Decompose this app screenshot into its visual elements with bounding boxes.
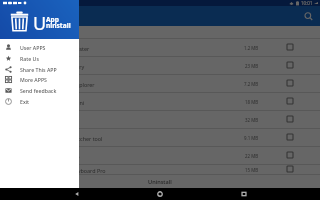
staticText: 9.1 MB (244, 135, 259, 141)
staticText: Share This APP (20, 66, 57, 73)
button[interactable]: Share This APP (0, 64, 79, 75)
staticText: Exit (20, 98, 30, 105)
staticText: User APPS (20, 44, 46, 51)
button[interactable]: Send feedback (0, 85, 79, 96)
button[interactable]: Dropbox (0, 110, 320, 128)
staticText: 10:01 (301, 0, 313, 6)
button[interactable]: Back (70, 188, 84, 200)
button[interactable]: Exit (0, 96, 79, 107)
staticText: ninstall (46, 21, 71, 30)
staticText: Emoji Keyboard Pro (56, 167, 106, 174)
staticText: 1.2 MB (244, 45, 259, 51)
staticText: Send feedback (20, 87, 57, 94)
button[interactable]: More APPS (0, 74, 79, 85)
staticText: Uninstall (148, 178, 172, 186)
button[interactable]: Recent apps (237, 188, 251, 200)
staticText: More APPS (20, 76, 47, 83)
staticText: ES File Explorer (56, 81, 95, 88)
staticText: Opera Mini (56, 99, 85, 106)
staticText: Uber app (56, 153, 80, 160)
button[interactable]: CM Battery (0, 56, 320, 74)
button[interactable]: Rate Us (0, 53, 79, 64)
button[interactable]: Home (153, 188, 167, 200)
staticText: App (46, 15, 59, 24)
staticText: CM Battery (56, 63, 85, 70)
staticText: 7.2 MB (244, 81, 259, 87)
button[interactable]: Lucky patcher tool (0, 128, 320, 146)
staticText: 32 MB (245, 117, 259, 123)
button[interactable]: ES File Explorer (0, 74, 320, 92)
button[interactable]: Search (303, 11, 314, 22)
staticText: 15 MB (245, 167, 259, 173)
staticText: 22 MB (245, 153, 259, 159)
staticText: Lucky patcher tool (56, 135, 103, 142)
staticText: Clean Master (56, 45, 90, 52)
staticText: 18 MB (245, 99, 259, 105)
button[interactable]: Uber app (0, 146, 320, 164)
button[interactable]: Clean Master (0, 38, 320, 56)
staticText: 23 MB (245, 63, 259, 69)
button[interactable]: Emoji Keyboard Pro (0, 164, 320, 174)
staticText: U (33, 11, 47, 36)
button[interactable]: User APPS (0, 42, 79, 53)
staticText: Rate Us (20, 55, 39, 62)
button[interactable]: Opera Mini (0, 92, 320, 110)
button[interactable]: Uninstall (132, 175, 188, 189)
